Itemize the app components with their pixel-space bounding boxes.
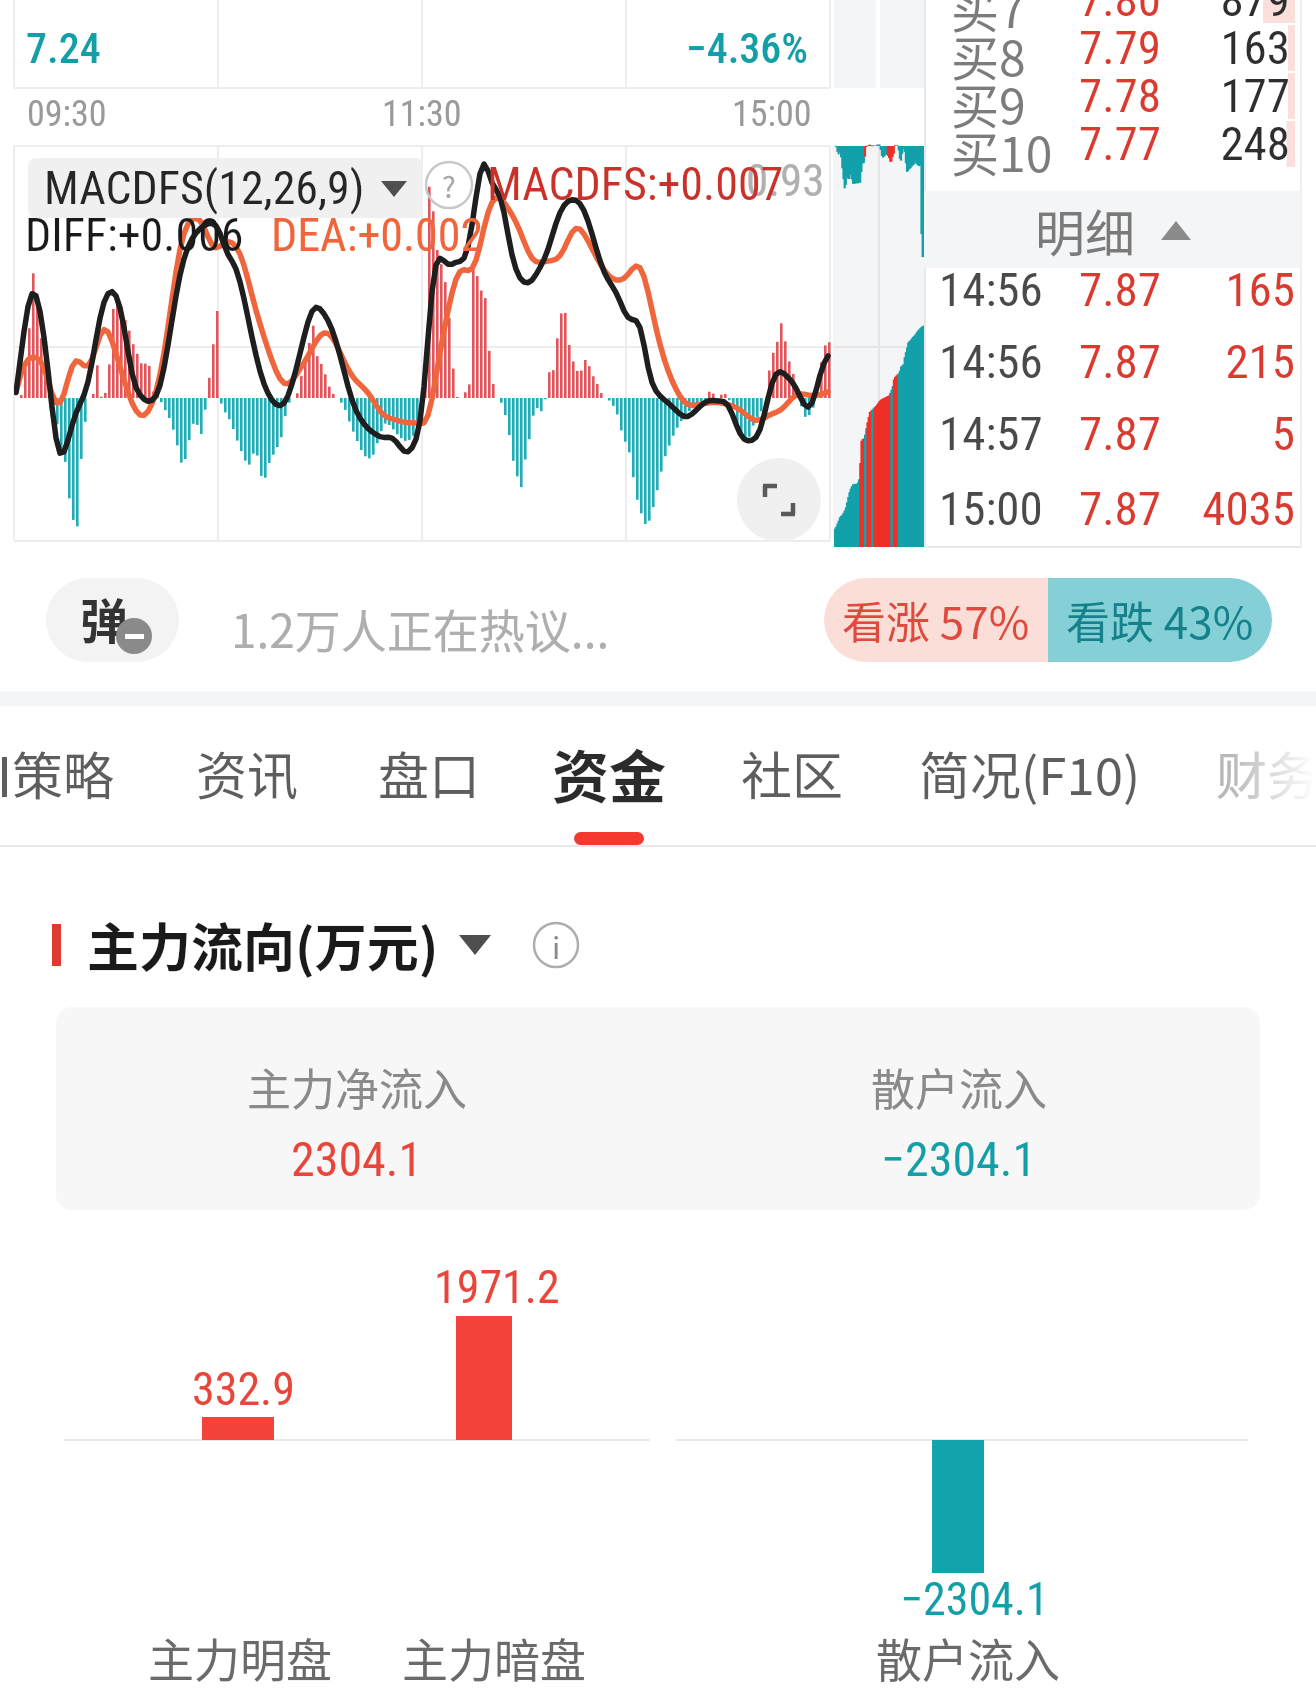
staticText: 879 xyxy=(1169,0,1290,20)
staticText: 0.93 xyxy=(746,154,825,207)
button[interactable]: Info xyxy=(533,922,579,968)
staticText: 买7 xyxy=(951,0,1026,20)
staticText: 165 xyxy=(1169,262,1295,317)
staticText: 5 xyxy=(1169,406,1295,461)
staticText: 弹 xyxy=(80,583,129,653)
button[interactable]: 资金 xyxy=(549,706,669,845)
staticText: 盘口 xyxy=(378,736,481,810)
staticText: 7.79 xyxy=(974,20,1161,68)
staticText: 332.9 xyxy=(192,1362,295,1416)
button[interactable]: 盘口 xyxy=(377,706,481,845)
button[interactable]: 14:56 xyxy=(924,262,1316,320)
staticText: −4.36% xyxy=(686,24,809,73)
staticText: 4035 xyxy=(1169,481,1295,536)
staticText: 09:30 xyxy=(27,93,107,135)
staticText: i xyxy=(552,924,561,967)
staticText: 买10 xyxy=(951,116,1053,164)
staticText: 明细 xyxy=(1035,194,1135,266)
staticText: 买9 xyxy=(951,68,1026,116)
button[interactable]: 策略 xyxy=(9,706,117,845)
staticText: 7.77 xyxy=(974,116,1161,164)
staticText: 177 xyxy=(1169,68,1290,116)
staticText: 14:56 xyxy=(939,334,1043,389)
button[interactable]: 明细 xyxy=(924,191,1301,268)
staticText: 散户流入 xyxy=(871,1055,1047,1119)
button[interactable]: 弹 xyxy=(46,578,179,662)
staticText: 215 xyxy=(1169,334,1295,389)
staticText: 7.87 xyxy=(974,334,1161,389)
button[interactable]: Fullscreen xyxy=(737,458,821,542)
button[interactable]: 14:57 xyxy=(924,406,1316,464)
staticText: DIFF:+0.006 xyxy=(25,208,244,262)
staticText: 7.87 xyxy=(974,481,1161,536)
staticText: 社区 xyxy=(741,736,844,810)
staticText: 主力流向(万元) xyxy=(87,907,439,982)
staticText: 15:00 xyxy=(939,481,1043,536)
staticText: 主力净流入 xyxy=(247,1055,467,1119)
staticText: 看涨 57% xyxy=(842,588,1030,652)
staticText: 1971.2 xyxy=(434,1260,560,1314)
button[interactable]: 买9 xyxy=(924,72,1316,120)
staticText: 主力暗盘 xyxy=(402,1624,586,1691)
staticText: 简况(F10) xyxy=(919,736,1141,810)
button[interactable]: 社区 xyxy=(740,706,844,845)
staticText: 看跌 43% xyxy=(1066,588,1254,652)
button[interactable]: 15:00 xyxy=(924,481,1316,539)
button[interactable]: 14:56 xyxy=(924,334,1316,392)
staticText: 策略 xyxy=(12,736,115,810)
staticText: 248 xyxy=(1169,116,1290,164)
staticText: 散户流入 xyxy=(876,1624,1060,1691)
staticText: MACDFS:+0.007 xyxy=(487,157,784,211)
staticText: ? xyxy=(442,164,456,206)
staticText: 163 xyxy=(1169,20,1290,68)
staticText: 7.24 xyxy=(26,24,101,73)
button[interactable]: Help xyxy=(424,160,474,210)
staticText: 7.78 xyxy=(974,68,1161,116)
button[interactable]: 买8 xyxy=(924,24,1316,72)
staticText: 1.2万人正在热议... xyxy=(231,595,610,662)
staticText: 主力明盘 xyxy=(148,1624,332,1691)
staticText: 7.87 xyxy=(974,406,1161,461)
staticText: −2304.1 xyxy=(881,1131,1037,1187)
staticText: 财务 xyxy=(1216,736,1316,810)
staticText: 7.87 xyxy=(974,262,1161,317)
staticText: 14:56 xyxy=(939,262,1043,317)
staticText: −2304.1 xyxy=(900,1572,1049,1626)
staticText: DEA:+0.002 xyxy=(271,208,484,262)
button[interactable]: 买10 xyxy=(924,120,1316,168)
button[interactable]: 资讯 xyxy=(195,706,299,845)
button[interactable]: MACDFS(12,26,9) xyxy=(28,158,423,218)
staticText: 资讯 xyxy=(196,736,299,810)
button[interactable]: 简况(F10) xyxy=(908,706,1152,845)
staticText: 15:00 xyxy=(732,93,812,135)
staticText: 7.80 xyxy=(974,0,1161,20)
button[interactable]: 主力流向(万元) xyxy=(52,907,579,982)
staticText: 11:30 xyxy=(382,93,462,135)
button[interactable]: 财务 xyxy=(1215,706,1316,845)
staticText: 14:57 xyxy=(939,406,1043,461)
staticText: MACDFS(12,26,9) xyxy=(44,161,365,215)
button[interactable]: 买7 xyxy=(924,0,1316,24)
staticText: 资金 xyxy=(552,732,666,815)
staticText: 买8 xyxy=(951,20,1026,68)
button[interactable]: 看涨 57% xyxy=(824,578,1272,662)
staticText: 2304.1 xyxy=(291,1131,423,1187)
